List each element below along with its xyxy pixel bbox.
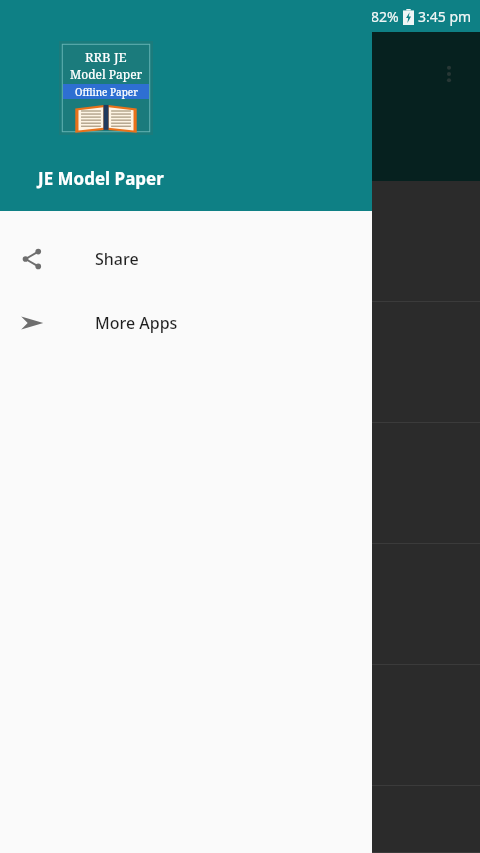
button[interactable]: Paper 4 <box>0 544 480 665</box>
button[interactable]: Paper 5 <box>0 665 480 786</box>
staticText: 3:45 pm <box>418 7 472 26</box>
staticText: 82% <box>371 7 399 26</box>
staticText: More Apps <box>95 312 178 334</box>
staticText: JE Model Paper <box>38 167 164 190</box>
button[interactable]: Share <box>0 227 372 291</box>
button[interactable]: Paper 2 <box>0 302 480 423</box>
button[interactable]: Paper 1 <box>0 181 480 302</box>
staticText: Offline Paper <box>75 85 138 99</box>
button[interactable]: Paper 3 <box>0 423 480 544</box>
button[interactable]: More options <box>431 56 467 92</box>
staticText: Share <box>95 248 139 270</box>
staticText: Model Paper <box>70 66 143 82</box>
staticText: Paper 1 <box>28 223 125 260</box>
staticText: RRB JE <box>85 48 127 66</box>
button[interactable]: More Apps <box>0 291 372 355</box>
button[interactable]: Paper 6 <box>0 786 480 853</box>
